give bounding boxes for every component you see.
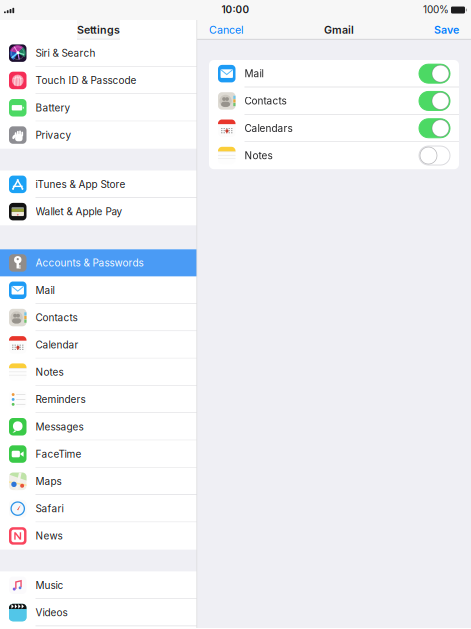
- staticText: Save: [434, 23, 459, 36]
- button[interactable]: Safari: [0, 495, 197, 522]
- staticText: Calendar: [35, 339, 78, 351]
- button[interactable]: On: [419, 91, 450, 110]
- staticText: Contacts: [35, 311, 77, 324]
- button[interactable]: Music: [0, 572, 197, 599]
- staticText: Messages: [35, 421, 83, 433]
- button[interactable]: News: [0, 522, 197, 550]
- button[interactable]: Videos: [0, 599, 197, 626]
- staticText: Music: [35, 579, 63, 591]
- staticText: Videos: [35, 606, 67, 619]
- button[interactable]: Privacy: [0, 121, 197, 149]
- staticText: Cancel: [209, 23, 244, 36]
- staticText: Settings: [77, 23, 120, 36]
- button[interactable]: FaceTime: [0, 440, 197, 468]
- staticText: Calendars: [244, 122, 292, 134]
- button[interactable]: On: [419, 64, 450, 83]
- staticText: Gmail: [324, 23, 354, 36]
- staticText: Safari: [35, 503, 63, 515]
- staticText: News: [35, 530, 62, 542]
- button[interactable]: Messages: [0, 413, 197, 440]
- staticText: iTunes & App Store: [35, 178, 125, 190]
- staticText: Battery: [35, 102, 70, 114]
- staticText: Mail: [35, 284, 54, 296]
- staticText: Mail: [244, 68, 263, 80]
- button[interactable]: Save: [434, 23, 459, 36]
- button[interactable]: Calendar: [0, 331, 197, 358]
- staticText: 10:00: [221, 3, 249, 16]
- staticText: Reminders: [35, 393, 85, 405]
- staticText: Contacts: [244, 95, 286, 107]
- button[interactable]: Mail: [0, 277, 197, 304]
- staticText: Privacy: [35, 129, 71, 141]
- button[interactable]: Reminders: [0, 386, 197, 413]
- staticText: 100%: [423, 3, 449, 16]
- button[interactable]: Wallet & Apple Pay: [0, 198, 197, 225]
- button[interactable]: On: [419, 119, 450, 138]
- button[interactable]: Touch ID & Passcode: [0, 67, 197, 94]
- staticText: Touch ID & Passcode: [35, 74, 136, 86]
- button[interactable]: Notes: [0, 358, 197, 386]
- button[interactable]: Siri & Search: [0, 39, 197, 67]
- staticText: Notes: [35, 366, 63, 378]
- staticText: FaceTime: [35, 448, 81, 460]
- staticText: Accounts & Passwords: [35, 257, 143, 269]
- staticText: Maps: [35, 475, 61, 487]
- staticText: Siri & Search: [35, 47, 95, 59]
- staticText: Wallet & Apple Pay: [35, 206, 122, 218]
- button[interactable]: Cancel: [209, 23, 244, 36]
- button[interactable]: iTunes & App Store: [0, 171, 197, 198]
- staticText: Notes: [244, 149, 272, 162]
- button[interactable]: Off: [419, 146, 450, 165]
- button[interactable]: Contacts: [0, 304, 197, 331]
- button[interactable]: Accounts & Passwords: [0, 249, 197, 277]
- button[interactable]: Maps: [0, 468, 197, 495]
- button[interactable]: Battery: [0, 94, 197, 121]
